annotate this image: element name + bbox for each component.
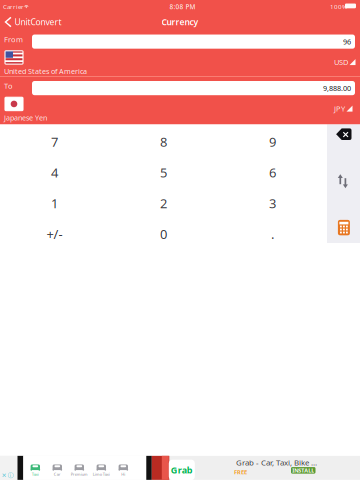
staticText: 9,888.00 [323,83,351,93]
staticText: 2 [160,194,167,212]
button[interactable]: Choose JPY currency [5,97,23,111]
button[interactable]: Swap currencies [338,174,348,188]
staticText: Taxi [32,471,39,477]
staticText: Premium [71,471,88,477]
staticText: Hi [121,471,125,477]
staticText: Carrier [3,2,24,11]
staticText: +/- [46,225,62,243]
button[interactable]: 3 [218,186,327,217]
staticText: 5 [160,164,167,181]
button[interactable]: ✕ [0,456,360,480]
staticText: USD [334,57,348,67]
button[interactable]: USD [334,57,355,67]
button[interactable]: 9 [218,124,327,155]
staticText: Grab [171,464,193,476]
staticText: ✕ [1,472,6,479]
staticText: 6 [269,164,276,181]
staticText: INSTALL [292,467,314,474]
button[interactable]: 5 [109,155,218,186]
button[interactable]: 4 [0,155,109,186]
button[interactable]: 1 [0,186,109,217]
staticText: 1 [51,194,58,212]
staticText: 8:08 PM [169,2,195,11]
button[interactable]: Choose USD currency [5,51,23,64]
staticText: JPY [334,103,345,114]
staticText: 7 [51,133,58,150]
button[interactable]: . [218,217,327,248]
button[interactable]: 9,888.00 [32,81,355,95]
button[interactable]: 7 [0,124,109,155]
staticText: 96 [343,37,351,46]
staticText: Car [54,471,61,477]
staticText: 3 [269,194,276,212]
button[interactable]: +/- [0,217,109,248]
button[interactable]: Delete [336,128,352,141]
button[interactable]: 0 [109,217,218,248]
button[interactable]: UnitConvert [3,15,66,29]
button[interactable]: Calculator [338,220,350,235]
button[interactable]: 8 [109,124,218,155]
staticText: 9 [269,133,276,150]
staticText: To [4,81,13,91]
staticText: . [271,225,274,243]
staticText: FREE [234,468,247,476]
staticText: Currency [161,16,198,28]
staticText: 0 [160,225,167,243]
staticText: 100% [330,2,347,11]
staticText: Limo Taxi [93,471,110,477]
staticText: Grab - Car, Taxi, Bike ... [236,457,317,468]
staticText: UnitConvert [14,16,61,28]
staticText: 8 [160,133,167,150]
staticText: ⓘ [8,471,14,479]
staticText: Japanese Yen [4,113,47,123]
button[interactable]: 2 [109,186,218,217]
button[interactable]: JPY [334,103,352,114]
staticText: 4 [51,164,58,181]
button[interactable]: 6 [218,155,327,186]
button[interactable]: 96 [32,34,355,49]
staticText: From [4,34,23,44]
staticText: United States of America [4,66,87,76]
